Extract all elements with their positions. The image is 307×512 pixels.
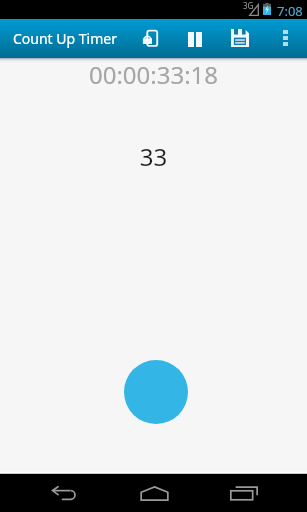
staticText: 3G [243,0,254,11]
button[interactable]: Lap [124,360,188,424]
staticText: Count Up Timer [13,29,117,48]
button[interactable]: Save [218,19,262,57]
button[interactable]: Pause [173,19,217,57]
button[interactable]: Recents [209,474,279,512]
staticText: 00:00:33:18 [0,58,307,91]
staticText: 33 [0,140,307,173]
button[interactable]: More options [272,19,298,57]
button[interactable]: Back [29,474,99,512]
button[interactable]: Home [119,474,189,512]
staticText: 7:08 [277,2,303,20]
button[interactable]: Rotation lock [128,19,172,57]
